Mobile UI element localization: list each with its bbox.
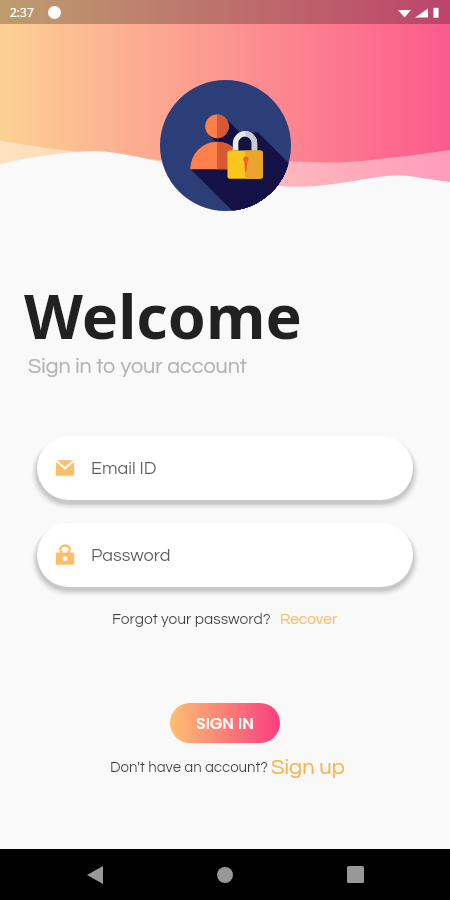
button[interactable]: Email ID [37,436,413,500]
button[interactable]: Home [201,849,249,900]
staticText: Password [91,546,171,565]
staticText: Email ID [91,459,157,478]
staticText: Sign in to your account [28,355,247,377]
button[interactable]: SIGN IN [170,703,280,743]
staticText: Don't have an account? [110,760,268,775]
button[interactable]: Recent apps [331,849,379,900]
staticText: SIGN IN [196,712,254,734]
button[interactable]: Sign up [271,756,345,779]
button[interactable]: Password [37,523,413,587]
button[interactable]: Recover [280,611,338,627]
staticText: Forgot your password? [112,611,271,627]
staticText: 2:37 [10,4,34,20]
staticText: Recover [280,611,338,627]
staticText: Sign up [271,756,345,779]
staticText: Welcome [24,274,302,357]
button[interactable]: Back [71,849,119,900]
